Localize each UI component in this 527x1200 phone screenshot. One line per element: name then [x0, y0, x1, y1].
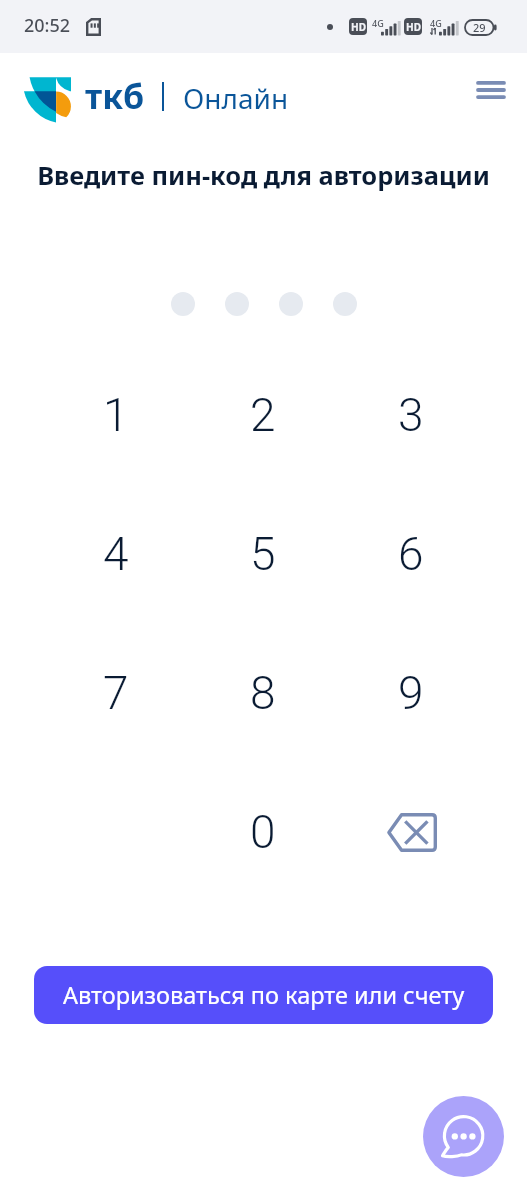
button[interactable]: 8 [189, 623, 337, 762]
staticText: ткб [85, 73, 145, 119]
button[interactable]: 2 [189, 345, 337, 484]
button[interactable]: 9 [337, 623, 485, 762]
staticText: 4G [430, 17, 442, 29]
staticText: 7 [103, 666, 129, 720]
staticText: Авторизоваться по карте или счету [63, 979, 465, 1011]
button[interactable]: Авторизоваться по карте или счету [34, 966, 493, 1024]
button[interactable]: Chat support [423, 1096, 504, 1177]
button[interactable]: 7 [42, 623, 189, 762]
staticText: Онлайн [183, 79, 289, 117]
button[interactable]: 4 [42, 484, 189, 623]
staticText: 4G [372, 17, 384, 29]
button[interactable]: Backspace [337, 762, 485, 901]
staticText: 9 [398, 666, 424, 720]
button[interactable]: 6 [337, 484, 485, 623]
button[interactable]: 0 [189, 762, 337, 901]
button[interactable]: 3 [337, 345, 485, 484]
staticText: 8 [250, 666, 276, 720]
staticText: 1 [103, 388, 129, 442]
staticText: 5 [250, 527, 276, 581]
staticText: HD [351, 20, 366, 34]
staticText: 29 [473, 20, 486, 35]
staticText: HD [406, 20, 421, 34]
staticText: 4 [103, 527, 129, 581]
button[interactable]: Menu [465, 64, 517, 116]
button[interactable]: 5 [189, 484, 337, 623]
button[interactable]: 1 [42, 345, 189, 484]
staticText: Введите пин-код для авторизации [37, 158, 490, 193]
staticText: 20:52 [24, 13, 71, 38]
staticText: 2 [250, 388, 276, 442]
staticText: 3 [398, 388, 424, 442]
staticText: 0 [250, 805, 276, 859]
other: Backspace [382, 803, 440, 861]
staticText: 6 [398, 527, 424, 581]
